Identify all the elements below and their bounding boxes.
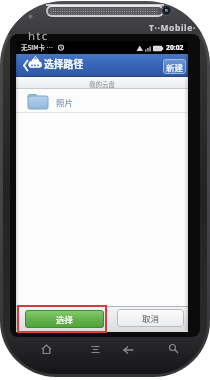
staticText: 我的云盘 (89, 79, 115, 88)
staticText: 取消 (142, 312, 160, 324)
button[interactable]: 新建 (163, 59, 186, 74)
staticText: htc (28, 28, 49, 44)
staticText: T··Mobile· (149, 22, 196, 34)
button[interactable]: 选择 (25, 310, 104, 328)
button[interactable]: 取消 (117, 309, 184, 327)
button[interactable] (167, 342, 180, 355)
button[interactable] (20, 56, 44, 75)
staticText: 照片 (56, 96, 74, 108)
button[interactable] (40, 343, 53, 356)
staticText: 20:02 (166, 43, 184, 52)
staticText: 新建 (166, 61, 184, 73)
button[interactable] (122, 343, 135, 356)
button[interactable]: 照片 (16, 89, 188, 112)
staticText: 选择路径 (44, 57, 84, 71)
button[interactable] (89, 343, 102, 356)
staticText: 无SIM卡 ⋯ (21, 42, 54, 51)
staticText: 选择 (56, 313, 74, 325)
